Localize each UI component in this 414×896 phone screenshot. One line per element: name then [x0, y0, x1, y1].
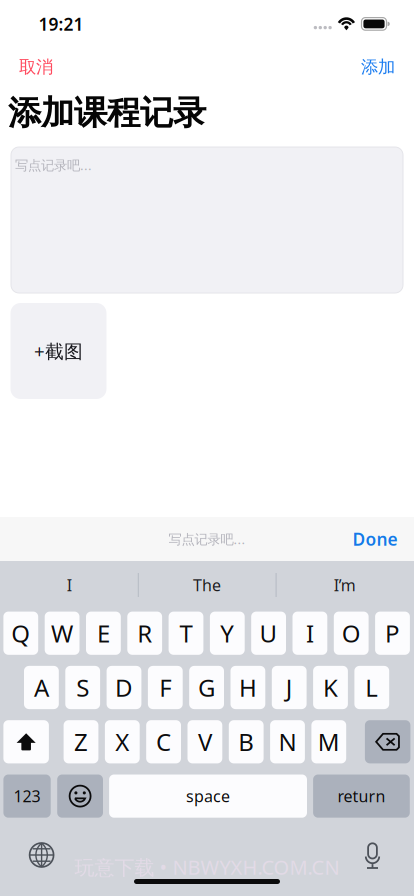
- button[interactable]: F: [148, 666, 183, 709]
- button[interactable]: Next keyboard: [22, 835, 62, 875]
- staticText: I’m: [334, 574, 356, 596]
- staticText: D: [115, 672, 133, 703]
- staticText: 添加课程记录: [8, 92, 206, 133]
- staticText: X: [115, 726, 129, 758]
- button[interactable]: Emoji keyboard: [57, 774, 103, 818]
- staticText: I: [306, 617, 314, 649]
- button[interactable]: D: [107, 666, 141, 709]
- button[interactable]: O: [334, 612, 369, 655]
- button[interactable]: R: [127, 612, 162, 655]
- staticText: K: [323, 672, 338, 703]
- button[interactable]: N: [270, 720, 305, 763]
- button[interactable]: 取消: [2, 50, 70, 84]
- staticText: return: [337, 785, 385, 807]
- button[interactable]: Dictation: [352, 835, 392, 875]
- staticText: The: [193, 574, 221, 596]
- staticText: 写点记录吧...: [168, 530, 245, 548]
- staticText: U: [260, 617, 278, 649]
- button[interactable]: Y: [210, 612, 245, 655]
- staticText: E: [97, 617, 110, 649]
- staticText: 添加: [361, 56, 395, 78]
- button[interactable]: L: [354, 666, 389, 709]
- button[interactable]: G: [189, 666, 224, 709]
- staticText: W: [51, 617, 73, 649]
- staticText: F: [159, 672, 171, 703]
- button[interactable]: I: [292, 612, 327, 655]
- button[interactable]: Delete: [365, 720, 410, 763]
- staticText: O: [342, 617, 361, 649]
- button[interactable]: space: [109, 774, 307, 818]
- staticText: 玩意下载 • NBWYXH.COM.CN: [74, 854, 339, 880]
- staticText: A: [34, 672, 49, 703]
- staticText: 19:21: [38, 12, 83, 35]
- staticText: R: [137, 617, 152, 649]
- staticText: Q: [11, 617, 30, 649]
- button[interactable]: K: [313, 666, 348, 709]
- staticText: N: [278, 726, 296, 758]
- staticText: 123: [13, 785, 40, 807]
- button[interactable]: W: [45, 612, 79, 655]
- button[interactable]: I: [1, 563, 138, 607]
- staticText: T: [179, 617, 192, 649]
- button[interactable]: B: [229, 720, 264, 763]
- staticText: V: [198, 726, 212, 758]
- button[interactable]: P: [375, 612, 410, 655]
- button[interactable]: I’m: [276, 563, 413, 607]
- staticText: Z: [74, 726, 88, 758]
- button[interactable]: 添加: [344, 50, 412, 84]
- button[interactable]: M: [311, 720, 346, 763]
- button[interactable]: H: [230, 666, 265, 709]
- button[interactable]: J: [272, 666, 307, 709]
- button[interactable]: return: [313, 774, 410, 818]
- button[interactable]: T: [169, 612, 203, 655]
- staticText: 取消: [19, 56, 53, 78]
- button[interactable]: C: [146, 720, 181, 763]
- staticText: space: [186, 785, 230, 807]
- staticText: G: [198, 672, 215, 703]
- staticText: +截图: [34, 339, 83, 363]
- button[interactable]: The: [138, 563, 275, 607]
- button[interactable]: Shift: [3, 720, 49, 763]
- button[interactable]: 123: [3, 774, 51, 818]
- staticText: I: [67, 574, 72, 596]
- staticText: J: [286, 672, 293, 703]
- button[interactable]: E: [86, 612, 121, 655]
- staticText: H: [239, 672, 257, 703]
- staticText: P: [385, 617, 400, 649]
- button[interactable]: V: [187, 720, 222, 763]
- button[interactable]: Q: [3, 612, 38, 655]
- staticText: 写点记录吧...: [15, 156, 92, 174]
- staticText: B: [238, 726, 254, 758]
- staticText: Y: [220, 617, 234, 649]
- staticText: S: [76, 672, 89, 703]
- button[interactable]: Z: [64, 720, 98, 763]
- staticText: C: [156, 726, 171, 758]
- staticText: Done: [352, 527, 397, 550]
- button[interactable]: Done: [338, 517, 412, 561]
- staticText: L: [365, 672, 378, 703]
- button[interactable]: U: [251, 612, 286, 655]
- button[interactable]: X: [105, 720, 140, 763]
- button[interactable]: +截图: [10, 303, 106, 399]
- button[interactable]: A: [24, 666, 59, 709]
- staticText: M: [318, 726, 340, 758]
- button[interactable]: S: [65, 666, 100, 709]
